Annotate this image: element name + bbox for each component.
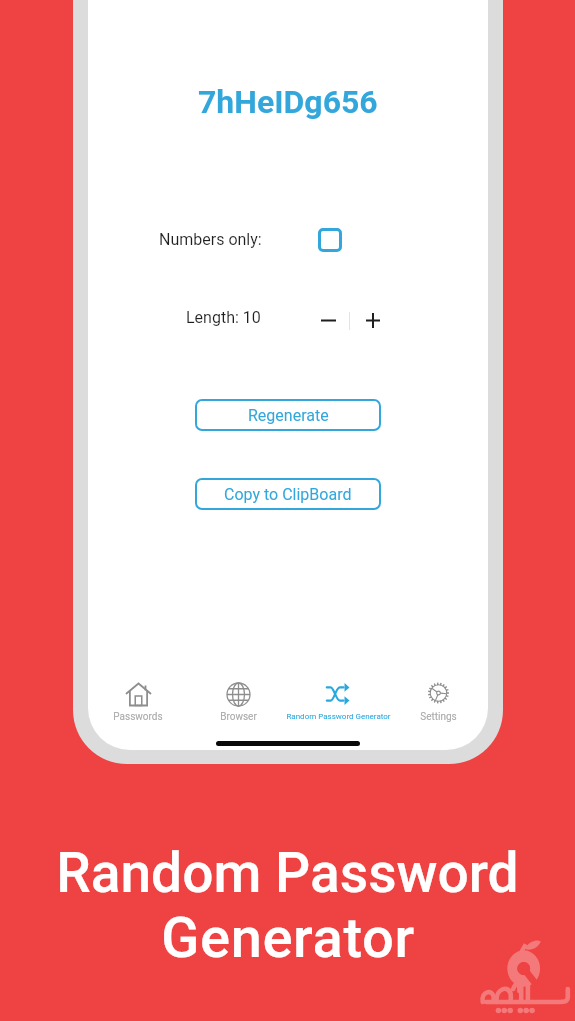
button[interactable]: Passwords [88, 676, 208, 722]
button[interactable]: Regenerate [195, 399, 381, 431]
staticText: Random Password [56, 841, 519, 905]
staticText: Passwords [113, 711, 163, 722]
button[interactable]: Settings [368, 676, 488, 722]
staticText: 7hHeIDg656 [198, 83, 378, 121]
staticText: Random Password Generator [286, 712, 391, 721]
other: Store watermark [478, 944, 573, 1016]
staticText: Generator [161, 905, 415, 971]
button[interactable]: Increase length [359, 307, 386, 334]
button[interactable]: Decrease length [315, 307, 342, 334]
staticText: Length: 10 [186, 308, 261, 327]
staticText: Regenerate [248, 406, 329, 425]
button[interactable]: Numbers only [318, 228, 342, 252]
staticText: Copy to ClipBoard [224, 485, 352, 504]
staticText: Numbers only: [159, 230, 262, 249]
staticText: Settings [420, 711, 457, 722]
staticText: Browser [220, 711, 257, 722]
button[interactable]: Copy to ClipBoard [195, 478, 381, 510]
button[interactable]: Random Password Generator [268, 677, 408, 723]
button[interactable]: Browser [168, 676, 308, 722]
